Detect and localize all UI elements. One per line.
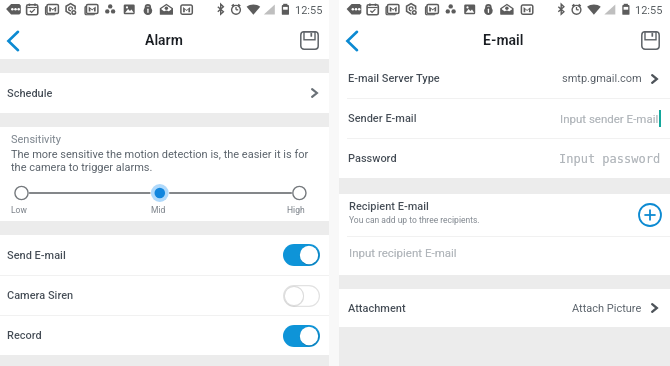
button[interactable]: Back xyxy=(339,23,369,57)
staticText: Sender E-mail xyxy=(348,112,417,125)
button[interactable]: Back xyxy=(0,23,30,57)
staticText: smtp.gmail.com xyxy=(562,72,642,85)
staticText: Sensitivity xyxy=(11,133,61,146)
button[interactable]: Sender E-mail xyxy=(339,99,670,138)
staticText: Attachment xyxy=(348,302,406,315)
button[interactable]: Password xyxy=(339,139,670,178)
staticText: Password xyxy=(348,152,397,165)
staticText: Send E-mail xyxy=(7,249,66,262)
staticText: The more sensitive the motion detection … xyxy=(11,148,319,173)
staticText: 12:55 xyxy=(295,4,323,17)
staticText: Input sender E-mail xyxy=(560,112,659,125)
staticText: Low xyxy=(11,205,27,215)
staticText: Input recipient E-mail xyxy=(349,246,457,259)
button[interactable]: Send E-mail xyxy=(0,235,329,275)
staticText: Camera Siren xyxy=(7,289,74,302)
button[interactable]: Save xyxy=(641,31,660,50)
button[interactable]: Input recipient E-mail xyxy=(339,237,670,275)
button[interactable]: Recipient E-mail xyxy=(339,194,670,236)
button[interactable]: Record xyxy=(0,316,329,355)
button[interactable]: E-mail Server Type xyxy=(339,59,670,98)
staticText: Recipient E-mail xyxy=(349,200,429,213)
staticText: High xyxy=(287,205,305,215)
staticText: Attach Picture xyxy=(572,302,642,315)
button[interactable]: Add recipient xyxy=(637,202,663,228)
staticText: You can add up to three recipients. xyxy=(349,215,480,225)
staticText: Record xyxy=(7,329,42,342)
staticText: Alarm xyxy=(145,32,183,48)
staticText: Mid xyxy=(151,205,166,215)
staticText: Input password xyxy=(559,152,661,166)
staticText: 12:55 xyxy=(635,4,663,17)
staticText: Schedule xyxy=(7,87,53,100)
button[interactable]: Attachment xyxy=(339,289,670,327)
button[interactable]: Schedule xyxy=(0,73,329,113)
button[interactable]: Camera Siren xyxy=(0,276,329,315)
button[interactable]: Save xyxy=(300,31,319,50)
staticText: E-mail xyxy=(483,32,524,48)
staticText: E-mail Server Type xyxy=(348,72,440,85)
